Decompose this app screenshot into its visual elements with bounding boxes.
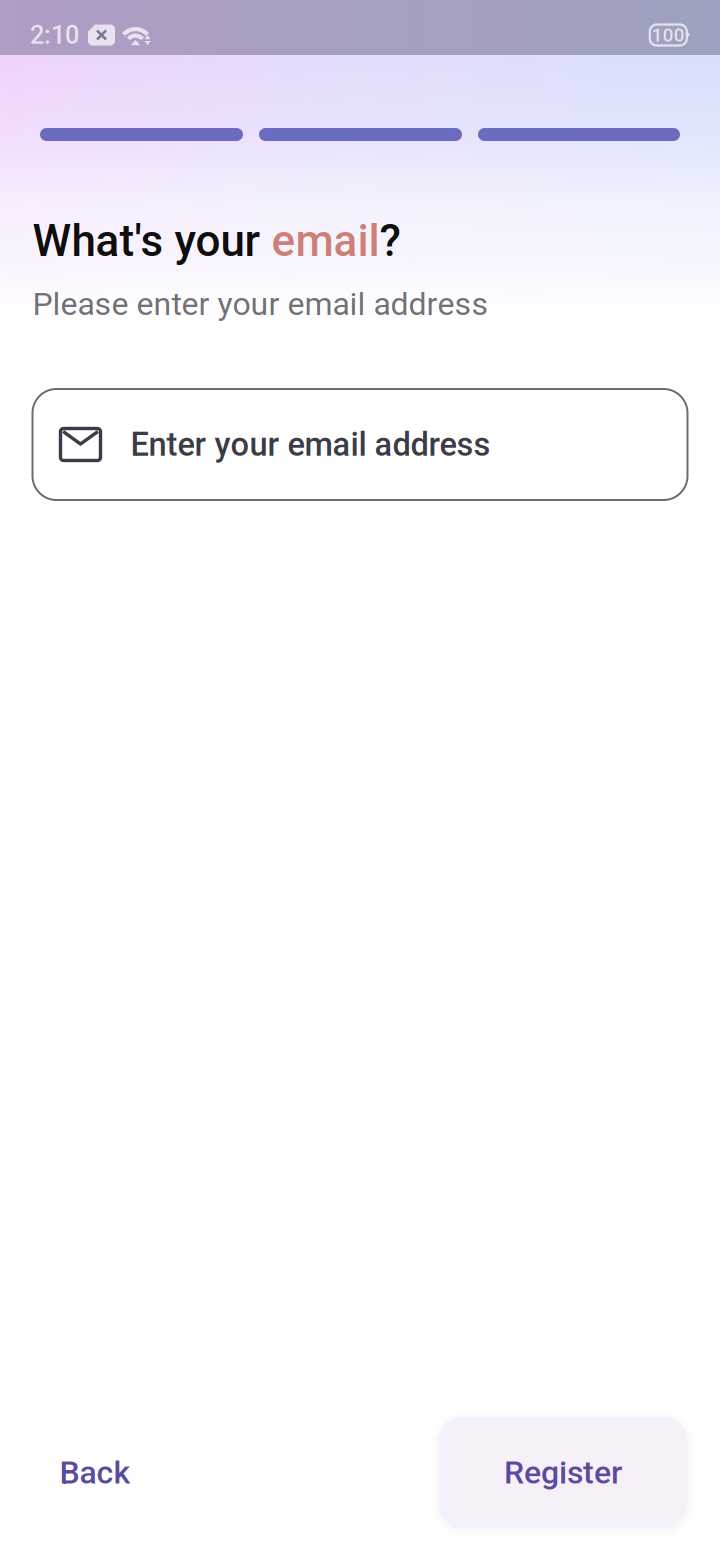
staticText: Enter your email address xyxy=(130,425,490,464)
button[interactable]: Enter your email address xyxy=(32,389,687,500)
staticText: Please enter your email address xyxy=(32,285,488,323)
staticText: 2:10 xyxy=(30,20,79,50)
staticText: 100 xyxy=(652,24,685,46)
staticText: email xyxy=(271,215,379,267)
staticText: ? xyxy=(379,215,400,267)
staticText: Back xyxy=(59,1454,130,1491)
staticText: Register xyxy=(504,1454,622,1491)
button[interactable]: Back xyxy=(32,1417,170,1528)
staticText: What's your xyxy=(32,215,271,267)
button[interactable]: Register xyxy=(438,1417,687,1528)
